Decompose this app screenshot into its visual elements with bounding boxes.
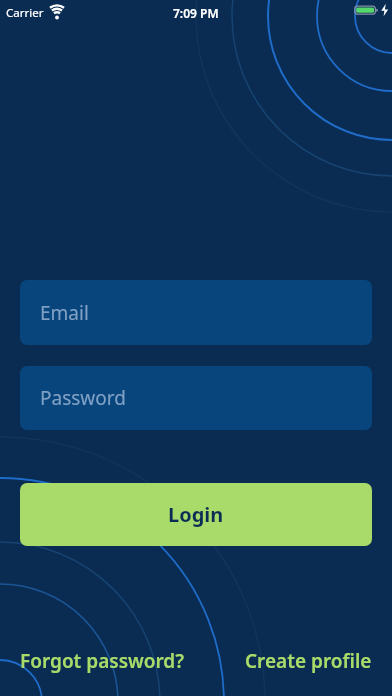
button[interactable]: Password (20, 366, 372, 430)
button[interactable]: Login (20, 483, 372, 546)
button[interactable]: Email (20, 280, 372, 345)
button[interactable]: Forgot password? (20, 648, 185, 674)
staticText: Password (40, 385, 126, 411)
staticText: Carrier (6, 5, 44, 21)
staticText: Email (40, 300, 89, 326)
button[interactable]: Create profile (245, 648, 372, 674)
staticText: 7:09 PM (173, 5, 219, 21)
staticText: Login (168, 501, 224, 528)
